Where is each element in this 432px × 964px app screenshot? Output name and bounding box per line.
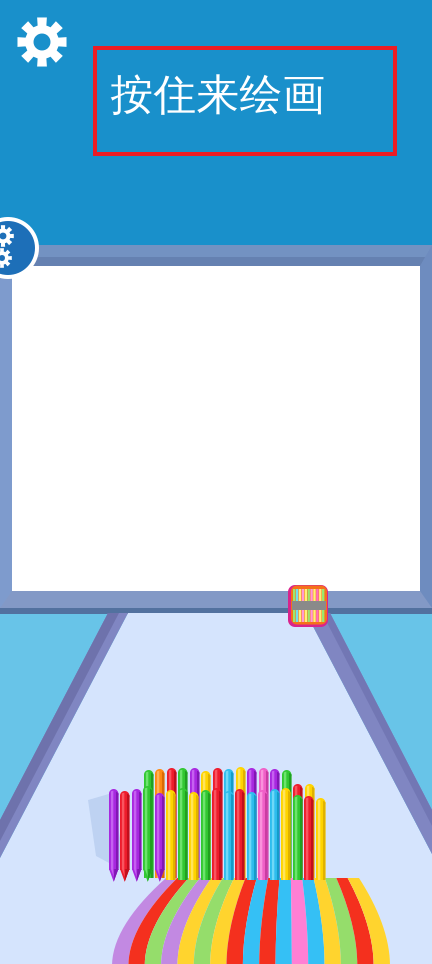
button[interactable]: Settings bbox=[0, 0, 432, 964]
staticText: 按住来绘画 bbox=[110, 69, 325, 121]
